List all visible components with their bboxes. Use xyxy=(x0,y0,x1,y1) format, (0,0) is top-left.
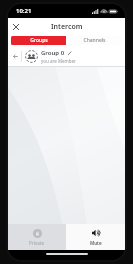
staticText: Channels xyxy=(83,37,106,44)
other: Back xyxy=(11,52,20,61)
staticText: Mute xyxy=(90,240,102,246)
button[interactable]: Close xyxy=(8,19,24,35)
staticText: you are Member xyxy=(41,58,76,64)
button[interactable]: Mute xyxy=(66,224,125,250)
button[interactable]: Edit group name xyxy=(67,50,73,56)
staticText: 10:21 xyxy=(16,7,32,15)
staticText: Private xyxy=(29,240,45,246)
button[interactable]: Channels xyxy=(66,36,122,45)
button[interactable]: Private xyxy=(8,224,66,250)
staticText: Intercom xyxy=(51,22,83,32)
staticText: Group 0 xyxy=(41,49,65,57)
button[interactable]: Groups xyxy=(11,36,66,45)
staticText: Groups xyxy=(30,37,48,44)
button[interactable]: Back xyxy=(8,46,125,66)
